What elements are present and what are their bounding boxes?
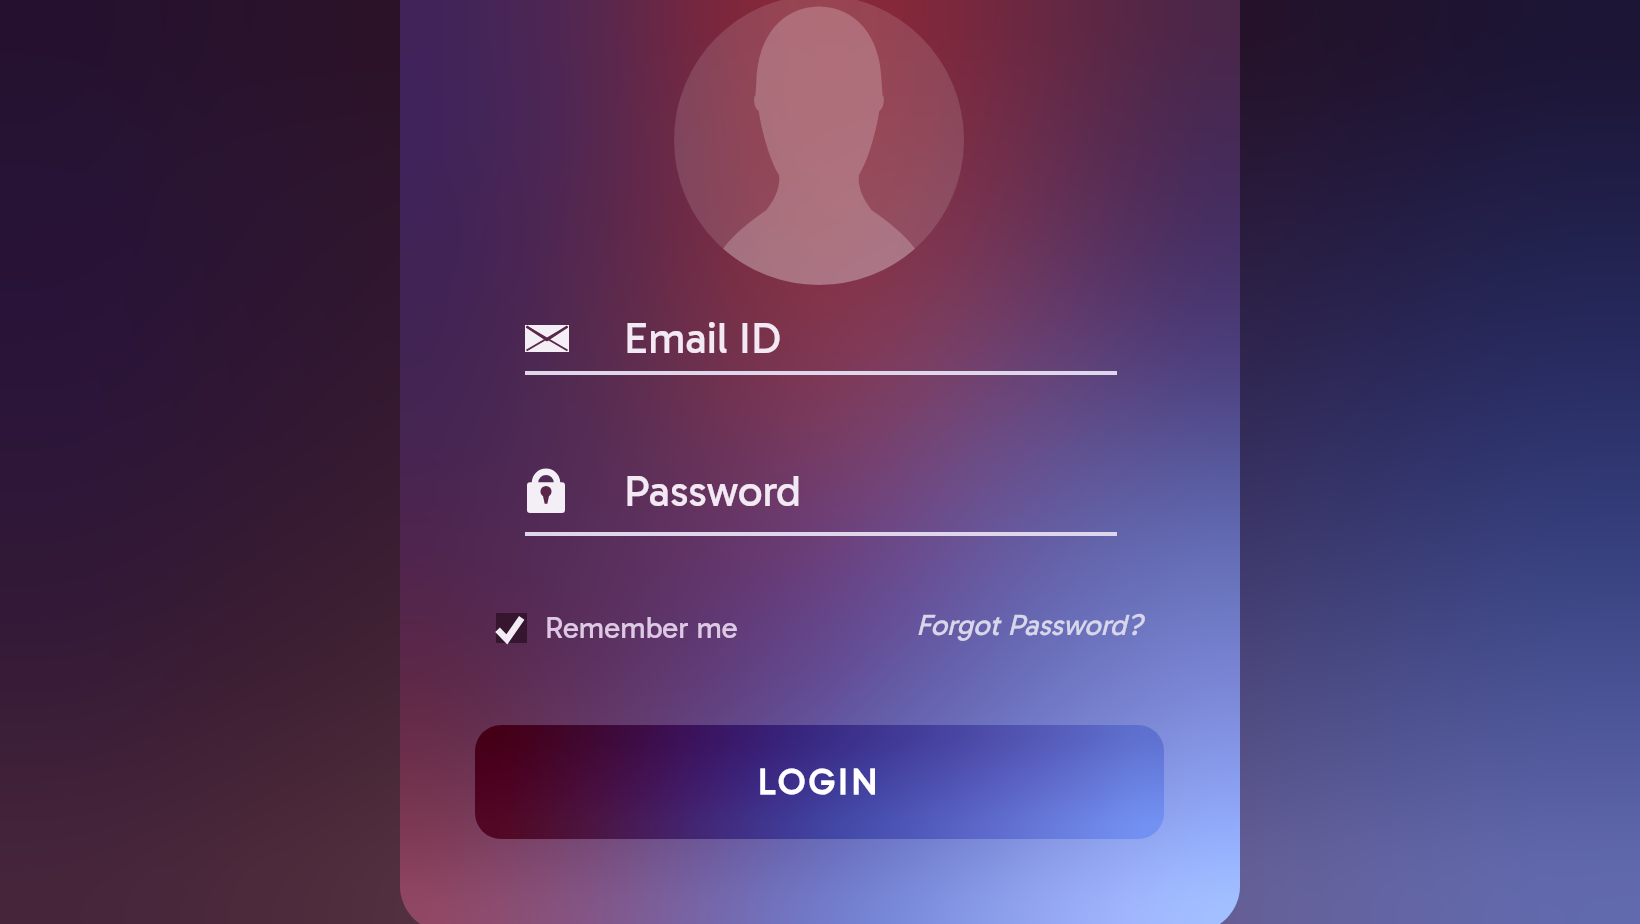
- button[interactable]: Forgot Password?: [916, 607, 1143, 642]
- button[interactable]: Remember me: [496, 610, 738, 646]
- other: Email: [525, 325, 569, 352]
- staticText: Email ID: [624, 312, 781, 365]
- staticText: Password: [624, 465, 802, 518]
- button[interactable]: LOGIN: [475, 725, 1164, 839]
- staticText: Remember me: [545, 610, 738, 646]
- staticText: Forgot Password?: [916, 607, 1143, 642]
- staticText: LOGIN: [758, 761, 882, 803]
- other: Password: [527, 466, 565, 513]
